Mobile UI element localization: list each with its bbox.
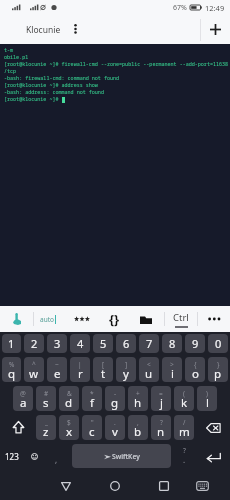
button[interactable]: ~ [47, 357, 67, 382]
button[interactable]: 5 [93, 334, 113, 353]
button[interactable]: > [162, 357, 182, 382]
button[interactable]: % [2, 357, 21, 382]
button[interactable]: 1 [2, 334, 21, 353]
staticText: $ [67, 418, 71, 427]
button[interactable]: {} [98, 306, 130, 332]
button[interactable]: = [151, 386, 171, 411]
staticText: > [170, 360, 174, 369]
button[interactable]: Hide keyboard [186, 470, 218, 500]
button[interactable]: Special keys [66, 306, 98, 332]
staticText: w [29, 366, 39, 382]
button[interactable]: auto [34, 306, 62, 332]
button[interactable]: Klocunie [0, 15, 67, 44]
button[interactable]: ? [174, 444, 195, 468]
staticText: { [194, 360, 197, 369]
staticText: auto [40, 315, 54, 324]
button[interactable]: ? [151, 415, 171, 440]
button[interactable]: 2 [24, 334, 44, 353]
staticText: = [159, 389, 163, 398]
staticText: 1 [8, 336, 15, 351]
button[interactable]: ) [197, 386, 217, 411]
staticText: d [65, 395, 73, 411]
staticText: ^ [32, 360, 36, 369]
staticText: , [137, 418, 139, 427]
staticText: {} [109, 310, 120, 328]
staticText: t-m [4, 47, 14, 54]
staticText: 4 [77, 336, 84, 351]
button[interactable]: , [128, 415, 148, 440]
button[interactable]: . [105, 415, 125, 440]
button[interactable]: # [36, 386, 56, 411]
button[interactable]: - [105, 386, 125, 411]
button[interactable]: 4 [70, 334, 90, 353]
staticText: k [181, 395, 188, 411]
button[interactable]: | [70, 357, 90, 382]
button[interactable]: Home [99, 470, 131, 500]
staticText: " [91, 418, 94, 427]
button[interactable]: [ [93, 357, 113, 382]
staticText: . [183, 454, 186, 465]
button[interactable]: Files [130, 306, 162, 332]
button[interactable]: Toggle touch mode [0, 306, 33, 332]
button[interactable]: More [198, 306, 230, 332]
button[interactable]: Ctrl [165, 306, 197, 332]
staticText: 9 [192, 336, 199, 351]
button[interactable]: Emoji [24, 444, 45, 468]
button[interactable]: ] [116, 357, 136, 382]
button[interactable]: 123 [0, 444, 23, 468]
button[interactable]: < [139, 357, 159, 382]
button[interactable]: 0 [208, 334, 228, 353]
staticText: } [217, 360, 220, 369]
staticText: 2 [31, 336, 38, 351]
button[interactable]: SwiftKey [72, 444, 171, 468]
staticText: 123 [5, 451, 19, 462]
button[interactable]: 9 [185, 334, 205, 353]
button[interactable]: $ [59, 415, 79, 440]
button[interactable]: / [174, 415, 194, 440]
staticText: , [55, 454, 58, 465]
staticText: 67% [173, 3, 187, 13]
button[interactable]: { [185, 357, 205, 382]
button[interactable]: @ [13, 386, 33, 411]
button[interactable]: More options [67, 15, 83, 44]
staticText: q [8, 366, 16, 382]
button[interactable]: Shift [0, 415, 36, 440]
staticText: [root@klocunie ~]# address show [4, 82, 98, 89]
button[interactable]: + [128, 386, 148, 411]
staticText: g [111, 395, 119, 411]
button[interactable]: New session [201, 15, 230, 44]
button[interactable]: * [82, 386, 102, 411]
staticText: -bash: firewall-cmd: command not found [4, 75, 120, 82]
staticText: ) [206, 389, 208, 398]
staticText: 3 [54, 336, 61, 351]
staticText: v [112, 424, 118, 440]
button[interactable]: Recent apps [148, 470, 180, 500]
staticText: f [90, 395, 94, 411]
staticText: 5 [100, 336, 107, 351]
staticText: & [67, 389, 72, 398]
button[interactable]: Back [50, 470, 82, 500]
staticText: r [78, 366, 83, 382]
staticText: 0 [215, 336, 222, 351]
button[interactable]: Enter [196, 444, 230, 468]
staticText: 6 [123, 336, 130, 351]
button[interactable]: 8 [162, 334, 182, 353]
button[interactable]: 6 [116, 334, 136, 353]
button[interactable]: 7 [139, 334, 159, 353]
button[interactable]: _ [36, 415, 56, 440]
button[interactable]: , [46, 444, 66, 468]
button[interactable]: 3 [47, 334, 67, 353]
button[interactable]: } [208, 357, 228, 382]
button[interactable]: " [82, 415, 102, 440]
staticText: s [43, 395, 49, 411]
button[interactable]: Backspace [196, 415, 230, 440]
staticText: x [66, 424, 73, 440]
button[interactable]: & [59, 386, 79, 411]
button[interactable]: t-m [0, 44, 230, 306]
staticText: 7 [146, 336, 153, 351]
staticText: o [192, 366, 199, 382]
button[interactable]: ( [174, 386, 194, 411]
button[interactable]: ^ [24, 357, 44, 382]
staticText: l [206, 395, 209, 411]
staticText: e [54, 366, 61, 382]
